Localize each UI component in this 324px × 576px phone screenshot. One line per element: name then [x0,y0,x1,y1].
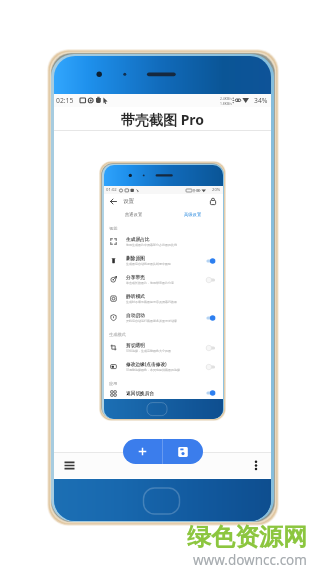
staticText: 自动启动 [126,312,145,318]
staticText: 可调整边缘圆角，本页也提供截图的边缘 [126,368,180,372]
staticText: 绿色资源网 [187,522,307,552]
staticText: 带壳截图 Pro [121,110,205,129]
staticText: 高级设置 [184,212,202,217]
staticText: 20% [212,187,221,193]
staticText: 分享带壳 [126,274,145,280]
button[interactable]: 删除原图 [104,251,223,270]
button[interactable]: 静听模式 [104,289,223,308]
staticText: 视觉 [109,226,118,231]
button[interactable]: 高级设置 [163,208,223,221]
staticText: 02:15 [56,96,74,105]
button[interactable]: 生成屏占比 [104,232,223,251]
staticText: 单击或长按图片，使用带壳图片分享 [126,281,174,285]
staticText: 删除原图 [126,255,145,261]
button[interactable]: Menu [58,454,80,476]
staticText: 设置 [123,198,135,205]
button[interactable]: Add [123,439,162,464]
staticText: 普通设置 [125,212,143,217]
staticText: 34% [254,96,268,105]
staticText: 剪切透明 [126,342,145,348]
staticText: 生成模式 [109,332,126,337]
staticText: 生成图后自动将原图从相册中删除 [126,262,171,266]
staticText: 可切边缘，生成完整圆角大小的图 [126,349,171,353]
button[interactable]: 剪切透明 [104,338,223,357]
button[interactable]: 修改边缘(点击修改) [206,364,216,370]
button[interactable]: 自动启动 [206,315,216,321]
staticText: 1.8KB/s [220,101,232,106]
staticText: 使用生成图片中屏幕部分占总图的比例 [126,243,177,247]
staticText: 开机后自动运行截图服务并显示浮动窗 [126,319,177,323]
button[interactable]: More options [245,454,267,476]
staticText: 返回切换后台 [126,390,155,396]
staticText: 生成时不播放截图提示音及屏幕闪效果 [126,300,177,304]
staticText: 静听模式 [126,293,145,299]
staticText: 2.4KB/s [220,96,232,101]
button[interactable]: 返回切换后台 [104,387,223,399]
button[interactable]: 删除原图 [206,258,216,264]
other: Back [110,198,117,205]
staticText: 应用 [109,381,118,386]
staticText: 01:02 [106,187,117,193]
other: Lock [209,197,217,205]
staticText: 修改边缘(点击修改) [126,361,167,367]
button[interactable]: 剪切透明 [206,345,216,351]
staticText: 生成屏占比 [126,236,150,242]
button[interactable]: 修改边缘(点击修改) [104,357,223,376]
button[interactable]: 分享带壳 [104,270,223,289]
button[interactable]: 分享带壳 [206,277,216,283]
staticText: www.downcc.com [193,551,307,569]
button[interactable]: 普通设置 [104,208,163,221]
button[interactable]: 自动启动 [104,308,223,327]
button[interactable]: 返回切换后台 [206,390,216,396]
button[interactable]: Save [163,439,203,464]
